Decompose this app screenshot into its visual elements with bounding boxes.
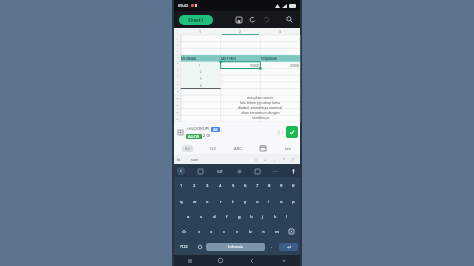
button[interactable]: 1 — [175, 178, 188, 194]
staticText: 7 — [177, 75, 179, 78]
button[interactable]: 3 — [260, 28, 300, 35]
button[interactable]: o — [275, 194, 287, 209]
staticText: 4 — [200, 84, 202, 88]
button[interactable]: GIF — [215, 166, 225, 176]
button[interactable]: More options — [271, 167, 279, 175]
button[interactable]: 123 — [200, 142, 225, 154]
button[interactable]: 3 — [201, 178, 214, 194]
button[interactable]: 0 — [287, 178, 299, 194]
staticText: Indonesia — [228, 245, 243, 249]
button[interactable]: 5 — [227, 178, 239, 194]
button[interactable]: Emoji — [193, 239, 206, 254]
button[interactable]: e — [201, 194, 214, 209]
staticText: akan tercantum dengan — [241, 110, 280, 115]
button[interactable]: l — [281, 209, 293, 224]
button[interactable]: p — [287, 194, 299, 209]
button[interactable]: u — [251, 194, 263, 209]
button[interactable]: v — [231, 224, 244, 239]
button[interactable]: w — [188, 194, 201, 209]
staticText: n — [262, 229, 265, 235]
button[interactable]: t — [227, 194, 239, 209]
button[interactable]: f — [221, 209, 233, 224]
staticText: tab — [285, 146, 291, 151]
staticText: 3 — [279, 29, 282, 34]
button[interactable]: b — [244, 224, 257, 239]
button[interactable]: z — [192, 224, 205, 239]
button[interactable]: 6 — [239, 178, 251, 194]
staticText: 12 — [176, 110, 179, 113]
button[interactable]: Sheet1 — [179, 15, 213, 25]
button[interactable]: Voice input — [289, 167, 297, 175]
button[interactable]: - — [270, 154, 279, 164]
staticText: A4:D8 — [188, 134, 200, 139]
button[interactable]: Clipboard — [253, 167, 261, 175]
staticText: Sheet1 — [188, 17, 204, 23]
button[interactable]: i — [263, 194, 275, 209]
button[interactable]: x — [205, 224, 218, 239]
button[interactable]: r — [214, 194, 227, 209]
button[interactable]: k — [269, 209, 281, 224]
button[interactable]: Home — [205, 255, 236, 266]
button[interactable]: 7 — [251, 178, 263, 194]
button[interactable]: Indonesia — [206, 243, 265, 251]
staticText: u — [256, 199, 259, 205]
button[interactable]: Save — [233, 14, 244, 25]
button[interactable]: Back — [236, 255, 268, 266]
staticText: 7 — [256, 183, 259, 189]
button[interactable]: Hide keyboard — [268, 255, 300, 266]
button[interactable]: y — [239, 194, 251, 209]
button[interactable]: h — [245, 209, 257, 224]
staticText: r — [220, 199, 222, 205]
button[interactable]: Date — [250, 142, 275, 154]
button[interactable]: / — [288, 154, 297, 164]
button[interactable]: Redo — [261, 14, 272, 25]
staticText: 3 — [177, 49, 179, 52]
button[interactable]: j — [257, 209, 269, 224]
button[interactable]: = — [252, 154, 261, 164]
button[interactable]: . — [265, 239, 278, 254]
button[interactable]: ABC — [225, 142, 250, 154]
button[interactable]: Shift — [175, 224, 192, 239]
button[interactable]: Search — [284, 14, 295, 25]
button[interactable]: Settings — [235, 167, 243, 175]
button[interactable]: f(x) — [174, 142, 200, 154]
button[interactable]: 4 — [214, 178, 227, 194]
staticText: 9 — [280, 183, 283, 189]
staticText: 11 — [176, 103, 179, 106]
button[interactable]: tab — [275, 142, 300, 154]
staticText: , — [221, 126, 223, 132]
staticText: fx — [177, 157, 181, 162]
button[interactable]: Recents — [174, 255, 205, 266]
button[interactable]: * — [279, 154, 288, 164]
button[interactable]: m — [270, 224, 283, 239]
button[interactable]: q — [175, 194, 188, 209]
button[interactable]: Back — [177, 167, 185, 175]
staticText: o — [280, 199, 283, 205]
button[interactable]: 2 — [220, 28, 260, 35]
button[interactable]: Stickers — [196, 167, 204, 175]
button[interactable]: Undo — [247, 14, 258, 25]
button[interactable]: d — [208, 209, 221, 224]
staticText: ditabel, setelahnya nominal — [238, 105, 282, 110]
button[interactable]: 8 — [263, 178, 275, 194]
button[interactable]: 2 — [188, 178, 201, 194]
button[interactable]: ?123 — [175, 239, 193, 254]
staticText: ?123 — [180, 244, 188, 249]
button[interactable]: Enter — [279, 243, 298, 251]
staticText: k — [274, 214, 277, 220]
button[interactable]: g — [233, 209, 245, 224]
button[interactable]: a — [182, 209, 195, 224]
staticText: 6 — [177, 68, 179, 71]
button[interactable]: n — [257, 224, 270, 239]
button[interactable]: s — [195, 209, 208, 224]
button[interactable]: 1 — [181, 28, 220, 35]
staticText: . — [271, 244, 273, 249]
button[interactable]: c — [218, 224, 231, 239]
staticText: y — [244, 199, 247, 205]
button[interactable]: Confirm formula — [286, 126, 298, 138]
button[interactable]: 9 — [275, 178, 287, 194]
button[interactable]: Backspace — [283, 224, 299, 239]
staticText: + — [264, 157, 267, 162]
button[interactable]: Select range — [176, 128, 185, 137]
button[interactable]: + — [261, 154, 270, 164]
